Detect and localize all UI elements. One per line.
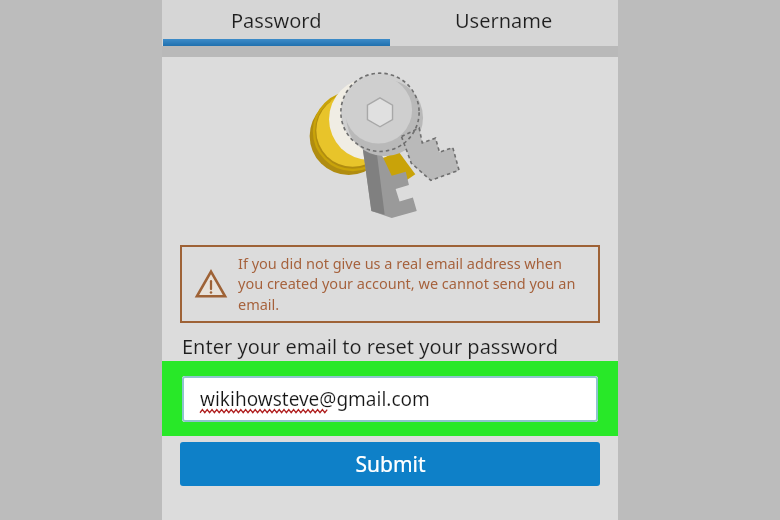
- staticText: If you did not give us a real email addr…: [238, 253, 590, 315]
- staticText: wikihowsteve@gmail.com: [200, 386, 430, 412]
- staticText: Password: [231, 7, 322, 34]
- staticText: Submit: [355, 450, 426, 479]
- button[interactable]: Submit: [180, 442, 600, 486]
- button[interactable]: Username: [390, 0, 618, 46]
- button[interactable]: Password: [162, 0, 390, 46]
- staticText: Username: [455, 7, 553, 34]
- staticText: Enter your email to reset your password: [182, 333, 558, 360]
- button[interactable]: wikihowsteve@gmail.com: [182, 376, 598, 422]
